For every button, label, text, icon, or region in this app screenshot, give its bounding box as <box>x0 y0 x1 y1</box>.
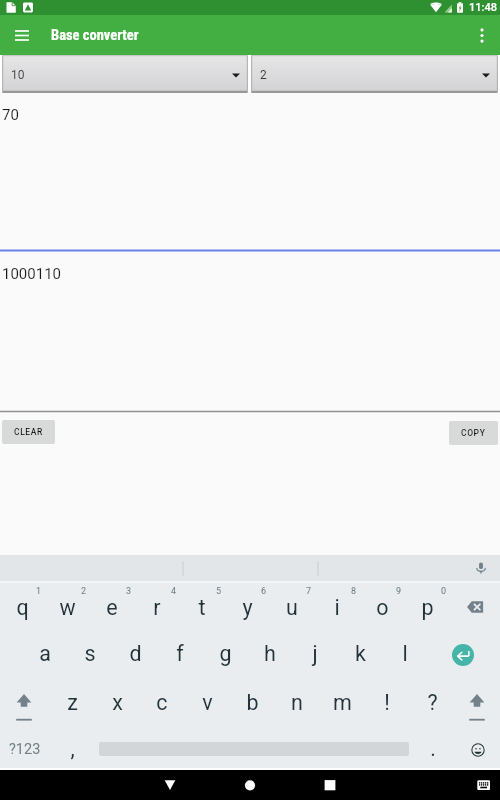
staticText: s <box>84 641 96 666</box>
staticText: 4 <box>171 586 177 597</box>
staticText: n <box>291 690 303 715</box>
staticText: 1 <box>36 586 42 597</box>
staticText: f <box>176 641 184 666</box>
button[interactable]: m <box>320 679 364 725</box>
button[interactable]: k <box>338 630 382 676</box>
staticText: 0 <box>441 586 447 597</box>
button[interactable]: . <box>411 725 455 771</box>
staticText: 2 <box>260 68 267 82</box>
button[interactable]: Voice input <box>470 557 492 579</box>
button[interactable]: r <box>135 584 179 630</box>
button[interactable]: d <box>113 630 157 676</box>
button[interactable]: w <box>45 584 89 630</box>
button[interactable]: CLEAR <box>2 420 55 444</box>
staticText: 11:48 <box>469 1 497 14</box>
button[interactable]: g <box>203 630 247 676</box>
button[interactable]: e <box>90 584 134 630</box>
staticText: u <box>286 595 298 620</box>
button[interactable]: x <box>95 679 139 725</box>
staticText: r <box>153 595 161 620</box>
staticText: ?123 <box>9 741 41 758</box>
staticText: b <box>246 690 259 715</box>
button[interactable]: i <box>315 584 359 630</box>
button[interactable]: , <box>50 725 94 771</box>
button[interactable]: h <box>248 630 292 676</box>
staticText: t <box>198 595 206 620</box>
staticText: m <box>333 690 352 715</box>
staticText: h <box>264 641 276 666</box>
button[interactable]: n <box>275 679 319 725</box>
button[interactable]: t <box>180 584 224 630</box>
button[interactable]: a <box>23 630 67 676</box>
button[interactable]: Shift <box>455 678 499 724</box>
staticText: q <box>16 595 29 620</box>
button[interactable]: Open navigation drawer <box>8 21 36 49</box>
button[interactable]: o <box>360 584 404 630</box>
button[interactable]: q <box>0 584 44 630</box>
staticText: z <box>67 690 78 715</box>
staticText: a <box>39 641 51 666</box>
button[interactable]: Switch keyboard <box>467 770 499 800</box>
button[interactable]: p <box>405 584 449 630</box>
staticText: COPY <box>461 428 486 438</box>
staticText: p <box>421 595 434 620</box>
staticText: k <box>355 641 366 666</box>
button[interactable]: f <box>158 630 202 676</box>
button[interactable]: b <box>230 679 274 725</box>
staticText: 10 <box>11 68 25 82</box>
button[interactable]: ?123 <box>3 734 47 762</box>
button[interactable]: y <box>225 584 269 630</box>
staticText: 5 <box>216 586 222 597</box>
staticText: , <box>70 736 75 761</box>
staticText: y <box>242 595 253 620</box>
button[interactable]: z <box>50 679 94 725</box>
button[interactable]: 1000110 <box>2 265 62 283</box>
staticText: d <box>129 641 142 666</box>
button[interactable]: Emoji <box>466 738 490 762</box>
button[interactable]: ? <box>410 679 454 725</box>
staticText: . <box>430 736 436 761</box>
staticText: ! <box>384 690 390 715</box>
button[interactable]: Back <box>154 770 186 800</box>
button[interactable]: s <box>68 630 112 676</box>
staticText: 7 <box>306 586 312 597</box>
button[interactable]: 10 <box>2 55 248 93</box>
staticText: c <box>156 690 168 715</box>
staticText: 2 <box>81 586 87 597</box>
button[interactable]: ! <box>365 679 409 725</box>
staticText: i <box>334 595 340 620</box>
button[interactable]: l <box>383 630 427 676</box>
staticText: CLEAR <box>14 427 43 437</box>
staticText: x <box>112 690 123 715</box>
button[interactable]: Backspace <box>453 584 497 630</box>
staticText: 8 <box>351 586 357 597</box>
button[interactable]: c <box>140 679 184 725</box>
staticText: 9 <box>396 586 402 597</box>
button[interactable]: 2 <box>251 55 498 93</box>
button[interactable]: j <box>293 630 337 676</box>
staticText: Base converter <box>51 27 139 44</box>
staticText: l <box>402 641 408 666</box>
button[interactable]: Shift <box>2 678 46 724</box>
staticText: e <box>106 595 118 620</box>
staticText: ? <box>427 690 438 715</box>
staticText: w <box>59 595 76 620</box>
button[interactable]: Home <box>234 770 266 800</box>
staticText: 6 <box>261 586 267 597</box>
button[interactable]: COPY <box>449 421 498 445</box>
button[interactable]: Recent apps <box>314 770 346 800</box>
button[interactable]: 70 <box>2 106 19 124</box>
staticText: v <box>202 690 213 715</box>
staticText: 3 <box>126 586 132 597</box>
button[interactable]: More options <box>468 21 496 49</box>
staticText: j <box>312 641 318 666</box>
button[interactable]: Enter <box>452 644 474 666</box>
button[interactable]: v <box>185 679 229 725</box>
staticText: g <box>219 641 232 666</box>
button[interactable]: u <box>270 584 314 630</box>
staticText: o <box>376 595 389 620</box>
